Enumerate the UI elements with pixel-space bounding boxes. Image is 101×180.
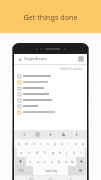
staticText: i <box>68 142 69 146</box>
button[interactable]: GIF <box>35 132 40 137</box>
staticText: g <box>52 151 54 155</box>
button[interactable]: u <box>58 139 65 148</box>
button[interactable]: y <box>51 139 58 148</box>
button[interactable]: Get things done <box>0 12 101 22</box>
button[interactable]: Recents <box>29 177 34 180</box>
staticText: Get things done <box>23 12 78 22</box>
button[interactable]: i <box>65 139 72 148</box>
staticText: j <box>66 151 67 155</box>
button[interactable]: p <box>79 139 86 148</box>
button[interactable]: b <box>55 157 62 166</box>
button[interactable]: d <box>33 148 41 157</box>
button[interactable]: x <box>34 157 41 166</box>
button[interactable]: Settings <box>74 132 79 137</box>
button[interactable] <box>14 103 87 109</box>
button[interactable]: l <box>77 148 84 157</box>
staticText: h <box>59 151 61 155</box>
staticText: b <box>58 160 60 164</box>
staticText: u <box>61 142 63 146</box>
staticText: z <box>29 160 31 164</box>
staticText: , <box>29 169 30 173</box>
button[interactable]: Clipboard <box>48 132 53 137</box>
button[interactable]: ?123 <box>15 166 26 175</box>
button[interactable]: f <box>41 148 49 157</box>
button[interactable]: z <box>26 157 34 166</box>
button[interactable] <box>14 73 87 79</box>
button[interactable]: s <box>25 148 33 157</box>
staticText: k <box>73 151 75 155</box>
staticText: r <box>40 142 42 146</box>
button[interactable]: Backspace <box>76 157 86 166</box>
button[interactable]: Emoji <box>75 166 86 175</box>
button[interactable]: More options <box>78 56 84 62</box>
button[interactable]: v <box>48 157 55 166</box>
button[interactable]: o <box>72 139 79 148</box>
button[interactable] <box>14 79 87 85</box>
button[interactable]: Latin-Eng <box>33 166 68 175</box>
staticText: l <box>80 151 81 155</box>
staticText: c <box>44 160 46 164</box>
staticText: Added 14 minutes <box>60 67 83 71</box>
button[interactable] <box>14 85 87 91</box>
button[interactable]: n <box>62 157 69 166</box>
button[interactable]: c <box>41 157 48 166</box>
staticText: f <box>44 151 46 155</box>
staticText: . <box>71 169 72 173</box>
staticText: m <box>71 160 74 164</box>
button[interactable]: w <box>23 139 30 148</box>
button[interactable]: r <box>37 139 44 148</box>
staticText: o <box>75 142 77 146</box>
button[interactable]: t <box>44 139 51 148</box>
button[interactable] <box>14 97 87 103</box>
button[interactable]: j <box>63 148 70 157</box>
staticText: p <box>82 142 84 146</box>
staticText: x <box>37 160 39 164</box>
button[interactable]: Back <box>68 177 73 180</box>
staticText: ?123 <box>18 169 24 173</box>
button[interactable]: e <box>30 139 37 148</box>
button[interactable]: g <box>49 148 56 157</box>
button[interactable]: Shift <box>15 157 26 166</box>
staticText: t <box>47 142 49 146</box>
button[interactable]: h <box>56 148 63 157</box>
button[interactable]: k <box>70 148 77 157</box>
staticText: s <box>28 151 30 155</box>
button[interactable]: Home <box>48 177 53 180</box>
button[interactable]: Sticker <box>22 132 27 137</box>
button[interactable] <box>14 91 87 97</box>
button[interactable]: Back <box>17 56 23 62</box>
staticText: q <box>18 142 20 146</box>
staticText: y <box>54 142 56 146</box>
staticText: d <box>36 151 38 155</box>
button[interactable]: Translate <box>61 132 66 137</box>
staticText: Ingredients <box>24 56 47 62</box>
staticText: e <box>33 142 35 146</box>
staticText: a <box>20 151 22 155</box>
button[interactable]: m <box>69 157 76 166</box>
button[interactable]: q <box>15 139 23 148</box>
staticText: n <box>65 160 67 164</box>
button[interactable] <box>14 109 87 115</box>
staticText: w <box>25 142 28 146</box>
staticText: v <box>51 160 53 164</box>
button[interactable]: a <box>17 148 25 157</box>
staticText: Latin-Eng <box>45 169 57 173</box>
